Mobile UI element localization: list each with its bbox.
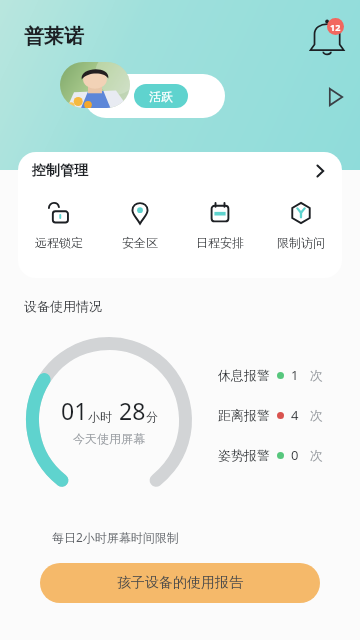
staticText: 今天使用屏幕 <box>73 431 145 446</box>
staticText: 活跃 <box>149 89 173 104</box>
button[interactable]: 播放 <box>322 84 348 110</box>
staticText: 吴桐 <box>92 87 120 105</box>
button[interactable]: 孩子设备的使用报告 <box>40 563 320 603</box>
button[interactable]: 控制管理 <box>18 152 342 190</box>
staticText: 分 <box>146 409 158 424</box>
staticText: 设备使用情况 <box>24 298 102 314</box>
button[interactable]: 日程安排 <box>180 194 260 254</box>
button[interactable]: 吴桐 <box>84 74 225 118</box>
staticText: 姿势报警 <box>218 447 270 463</box>
button[interactable]: 远程锁定 <box>19 194 99 254</box>
staticText: 限制访问 <box>277 235 325 250</box>
staticText: 普莱诺 <box>24 24 84 49</box>
button[interactable]: 安全区 <box>100 194 180 254</box>
staticText: 每日2小时屏幕时间限制 <box>52 529 179 545</box>
staticText: 日程安排 <box>196 235 244 250</box>
staticText: 12 <box>330 21 341 33</box>
staticText: 安全区 <box>122 235 158 250</box>
staticText: 休息报警 <box>218 367 270 383</box>
button[interactable]: 头像 <box>60 62 130 108</box>
staticText: 4 <box>291 406 299 424</box>
staticText: 孩子设备的使用报告 <box>117 574 243 592</box>
button[interactable]: 限制访问 <box>261 194 341 254</box>
staticText: 次 <box>310 447 323 463</box>
staticText: 01 <box>61 395 88 426</box>
button[interactable]: 通知 <box>310 18 348 56</box>
staticText: 次 <box>310 407 323 423</box>
staticText: 次 <box>310 367 323 383</box>
staticText: 1 <box>291 366 299 384</box>
staticText: 28 <box>119 395 146 426</box>
staticText: 控制管理 <box>32 162 88 180</box>
staticText: 0 <box>291 446 299 464</box>
staticText: 小时 <box>88 409 112 424</box>
staticText: 距离报警 <box>218 407 270 423</box>
staticText: 远程锁定 <box>35 235 83 250</box>
